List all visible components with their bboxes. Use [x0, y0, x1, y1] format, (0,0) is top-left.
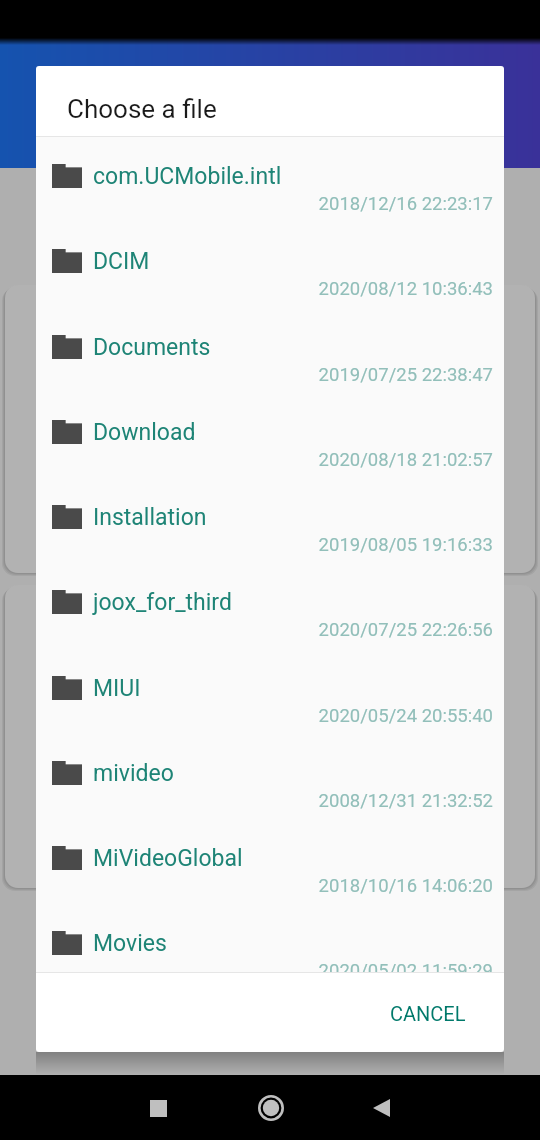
staticText: CANCEL — [390, 1002, 466, 1025]
staticText: DCIM — [93, 248, 150, 275]
button[interactable]: com.UCMobile.intl — [36, 137, 504, 223]
staticText: 2008/12/31 21:32:52 — [36, 790, 493, 812]
staticText: joox_for_third — [93, 589, 232, 616]
staticText: 2018/12/16 22:23:17 — [36, 193, 493, 215]
button[interactable]: Home — [247, 1084, 295, 1132]
staticText: Movies — [93, 930, 167, 957]
button[interactable]: CANCEL — [378, 991, 478, 1036]
button[interactable]: mivideo — [36, 734, 504, 820]
button[interactable]: Recents — [134, 1084, 182, 1132]
staticText: 2020/08/12 10:36:43 — [36, 278, 493, 300]
staticText: MiVideoGlobal — [93, 845, 243, 872]
button[interactable]: joox_for_third — [36, 563, 504, 649]
staticText: Installation — [93, 504, 207, 531]
staticText: Choose a file — [67, 94, 217, 124]
staticText: mivideo — [93, 760, 174, 787]
staticText: 2019/07/25 22:38:47 — [36, 364, 493, 386]
button[interactable]: DCIM — [36, 222, 504, 308]
staticText: MIUI — [93, 675, 141, 702]
staticText: com.UCMobile.intl — [93, 163, 282, 190]
button[interactable]: Installation — [36, 478, 504, 564]
staticText: 2020/07/25 22:26:56 — [36, 619, 493, 641]
staticText: 2020/05/02 11:59:29 — [36, 960, 493, 972]
staticText: Download — [93, 419, 196, 446]
staticText: 2018/10/16 14:06:20 — [36, 875, 493, 897]
button[interactable]: MIUI — [36, 649, 504, 735]
staticText: 2020/05/24 20:55:40 — [36, 705, 493, 727]
button[interactable]: MiVideoGlobal — [36, 819, 504, 905]
staticText: Documents — [93, 334, 211, 361]
button[interactable]: Download — [36, 393, 504, 479]
button[interactable]: Movies — [36, 904, 504, 972]
staticText: 2020/08/18 21:02:57 — [36, 449, 493, 471]
staticText: 2019/08/05 19:16:33 — [36, 534, 493, 556]
button[interactable]: Back — [357, 1084, 405, 1132]
button[interactable]: Documents — [36, 308, 504, 394]
